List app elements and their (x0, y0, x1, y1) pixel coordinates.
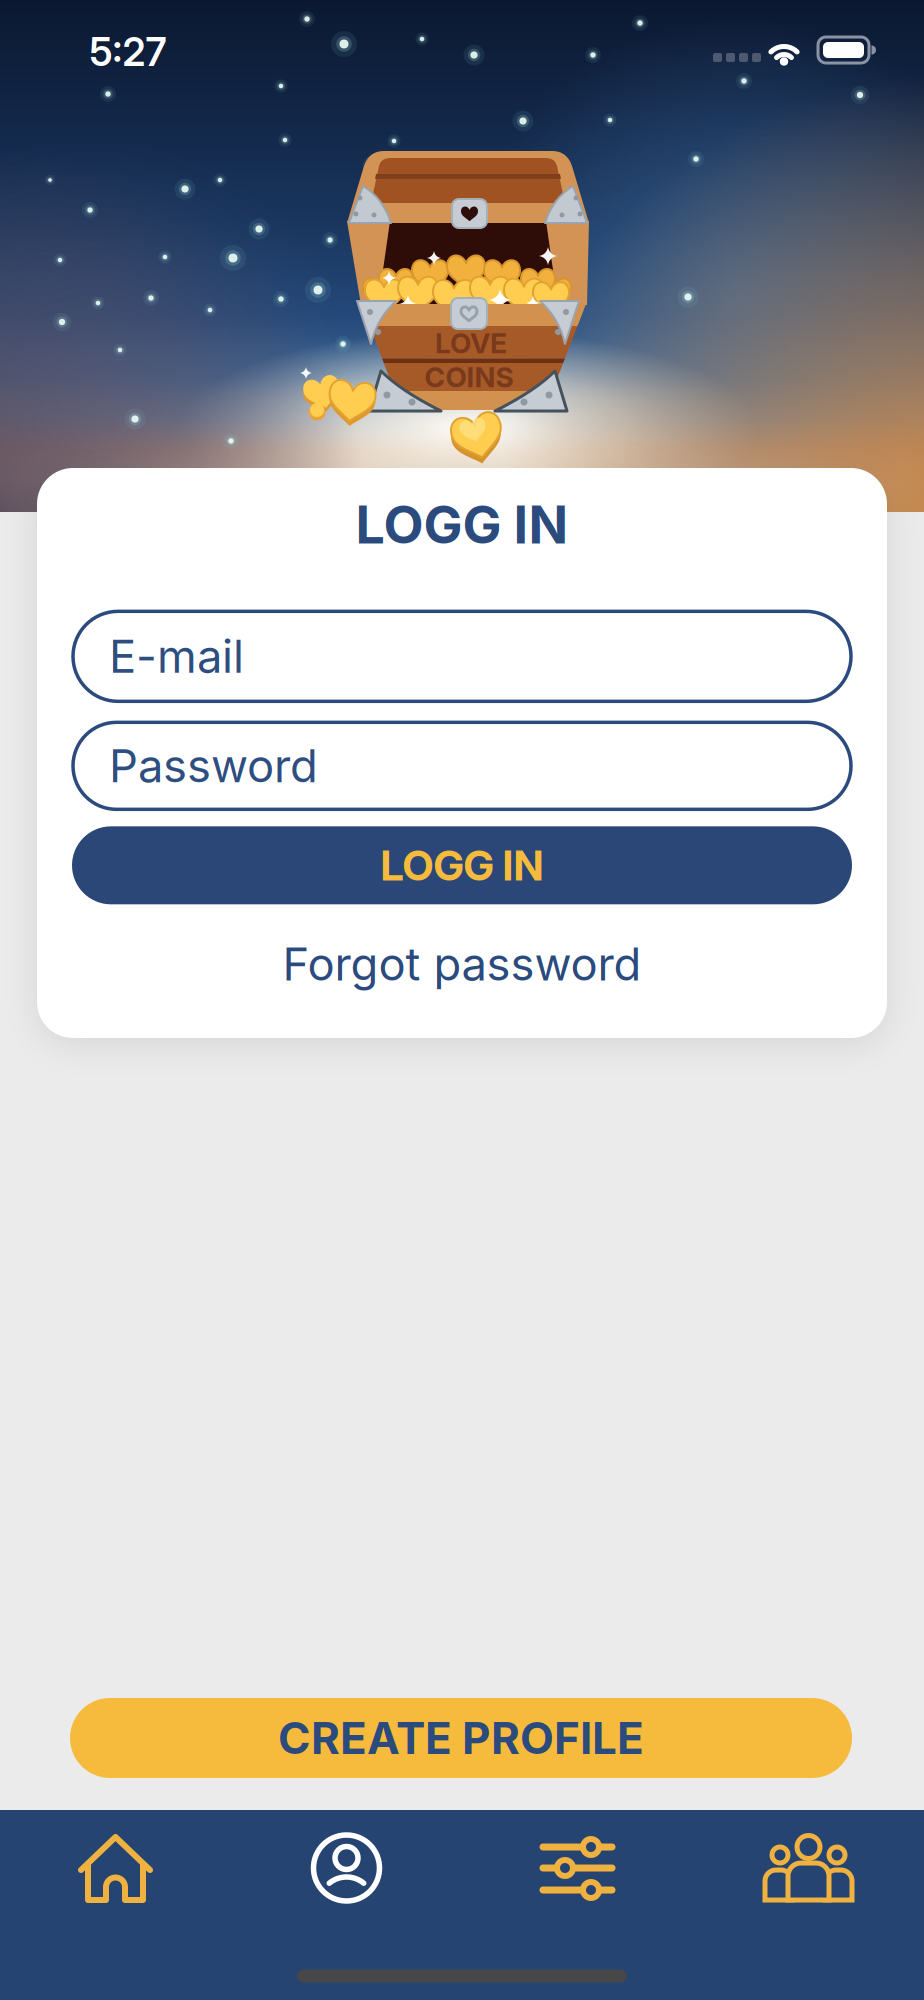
staticText: LOGG IN (380, 841, 543, 890)
staticText: CREATE PROFILE (278, 1712, 644, 1764)
staticText: E-mail (109, 630, 244, 683)
button[interactable]: CREATE PROFILE (70, 1698, 852, 1778)
staticText: Forgot password (282, 937, 641, 991)
button[interactable]: Forgot password (282, 937, 641, 991)
button[interactable]: E-mail (73, 611, 851, 701)
button[interactable]: Settings (462, 1806, 693, 1936)
staticText: LOVE (435, 326, 507, 359)
button[interactable]: LOGG IN (72, 826, 852, 904)
button[interactable]: Community (693, 1806, 924, 1936)
button[interactable]: Profile (231, 1806, 462, 1936)
staticText: Password (109, 739, 318, 793)
button[interactable]: Home (0, 1806, 231, 1936)
staticText: LOGG IN (355, 494, 568, 555)
staticText: COINS (424, 360, 513, 393)
staticText: 5:27 (89, 29, 166, 75)
button[interactable]: Password (73, 722, 851, 809)
